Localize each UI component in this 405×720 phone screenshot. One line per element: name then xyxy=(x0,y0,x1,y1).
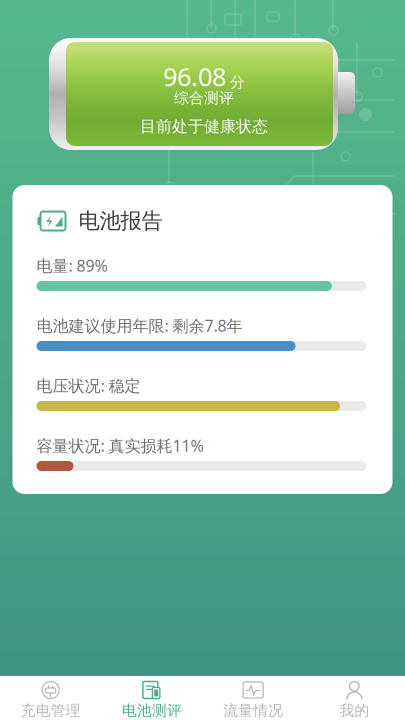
staticText: 流量情况 xyxy=(223,701,283,719)
staticText: 电池报告 xyxy=(78,208,162,234)
button[interactable]: 电池测评 xyxy=(101,676,202,720)
staticText: 电量: 89% xyxy=(36,255,107,276)
button[interactable]: 流量情况 xyxy=(202,676,304,720)
staticText: 容量状况: 真实损耗11% xyxy=(36,435,203,456)
staticText: 充电管理 xyxy=(21,701,81,719)
staticText: 综合测评 xyxy=(174,89,234,107)
staticText: 96.08 xyxy=(163,60,226,93)
staticText: 目前处于健康状态 xyxy=(140,117,268,136)
staticText: 电压状况: 稳定 xyxy=(36,375,140,396)
staticText: 分 xyxy=(230,73,245,91)
staticText: 我的 xyxy=(339,701,369,719)
button[interactable]: 充电管理 xyxy=(0,676,101,720)
staticText: 电池建议使用年限: 剩余7.8年 xyxy=(36,315,242,336)
button[interactable]: 我的 xyxy=(304,676,405,720)
staticText: 电池测评 xyxy=(122,701,182,719)
